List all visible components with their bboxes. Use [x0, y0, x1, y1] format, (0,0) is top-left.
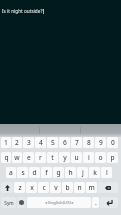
staticText: h [68, 168, 73, 177]
button[interactable]: o [95, 152, 106, 163]
button[interactable]: w [12, 152, 22, 163]
staticText: s [21, 168, 25, 177]
staticText: o [98, 153, 103, 162]
staticText: g [56, 168, 61, 177]
staticText: 1 [4, 138, 8, 147]
staticText: t [51, 153, 54, 162]
staticText: 9 [99, 138, 103, 147]
button[interactable]: 0 [107, 137, 118, 148]
button[interactable]: z [14, 182, 25, 193]
button[interactable]: 7 [71, 137, 82, 148]
staticText: r [39, 153, 42, 162]
staticText: i [88, 153, 90, 162]
button[interactable]: h [65, 167, 76, 178]
staticText: u [74, 153, 79, 162]
button[interactable]: y [59, 152, 70, 163]
staticText: 6 [63, 138, 67, 147]
staticText: 5 [51, 138, 55, 147]
button[interactable] [81, 124, 121, 137]
staticText: Is it night outside? [2, 8, 43, 14]
button[interactable]: a [6, 167, 16, 178]
staticText: 8 [87, 138, 91, 147]
button[interactable]: 1 [1, 137, 11, 148]
button[interactable]: Shift [1, 182, 13, 193]
button[interactable]: d [29, 167, 40, 178]
button[interactable]: x [26, 182, 37, 193]
button[interactable]: n [74, 182, 85, 193]
staticText: 7 [75, 138, 79, 147]
button[interactable]: 4 [35, 137, 46, 148]
staticText: y [63, 153, 67, 162]
staticText: j [82, 168, 84, 177]
button[interactable]: t [47, 152, 58, 163]
staticText: x [30, 183, 34, 192]
button[interactable]: p [107, 152, 118, 163]
button[interactable]: m [86, 182, 97, 193]
staticText: c [42, 183, 46, 192]
button[interactable]: f [41, 167, 52, 178]
staticText: 4 [39, 138, 43, 147]
button[interactable] [0, 124, 39, 137]
staticText: l [106, 168, 108, 177]
button[interactable] [40, 124, 80, 137]
staticText: ◂ English(US) ▸ [45, 200, 74, 206]
staticText: m [88, 183, 95, 192]
staticText: 0 [111, 138, 115, 147]
staticText: n [77, 183, 82, 192]
staticText: 2 [15, 138, 19, 147]
button[interactable]: l [101, 167, 112, 178]
staticText: a [9, 168, 13, 177]
button[interactable]: . [92, 197, 99, 208]
staticText: z [18, 183, 22, 192]
button[interactable]: 8 [83, 137, 94, 148]
button[interactable]: Enter [100, 197, 118, 208]
button[interactable]: s [17, 167, 28, 178]
button[interactable]: 9 [95, 137, 106, 148]
button[interactable]: 2 [12, 137, 22, 148]
button[interactable]: Change keyboard [17, 197, 26, 208]
staticText: . [95, 198, 97, 207]
staticText: v [54, 183, 58, 192]
staticText: q [4, 153, 9, 162]
button[interactable]: 6 [59, 137, 70, 148]
staticText: e [27, 153, 31, 162]
button[interactable]: k [89, 167, 100, 178]
staticText: d [32, 168, 37, 177]
button[interactable]: q [1, 152, 11, 163]
staticText: f [45, 168, 48, 177]
staticText: b [65, 183, 70, 192]
button[interactable]: u [71, 152, 82, 163]
button[interactable]: r [35, 152, 46, 163]
button[interactable]: j [77, 167, 88, 178]
staticText: w [14, 153, 20, 162]
button[interactable]: Sym [1, 197, 16, 208]
button[interactable]: e [23, 152, 34, 163]
button[interactable]: 5 [47, 137, 58, 148]
staticText: k [93, 168, 97, 177]
button[interactable]: Backspace [98, 182, 118, 193]
button[interactable]: i [83, 152, 94, 163]
button[interactable]: 3 [23, 137, 34, 148]
button[interactable]: g [53, 167, 64, 178]
staticText: p [110, 153, 115, 162]
button[interactable]: v [50, 182, 61, 193]
button[interactable]: ◂ English(US) ▸ [27, 197, 91, 208]
staticText: 3 [27, 138, 31, 147]
staticText: Sym [4, 200, 14, 206]
button[interactable]: b [62, 182, 73, 193]
button[interactable]: c [38, 182, 49, 193]
